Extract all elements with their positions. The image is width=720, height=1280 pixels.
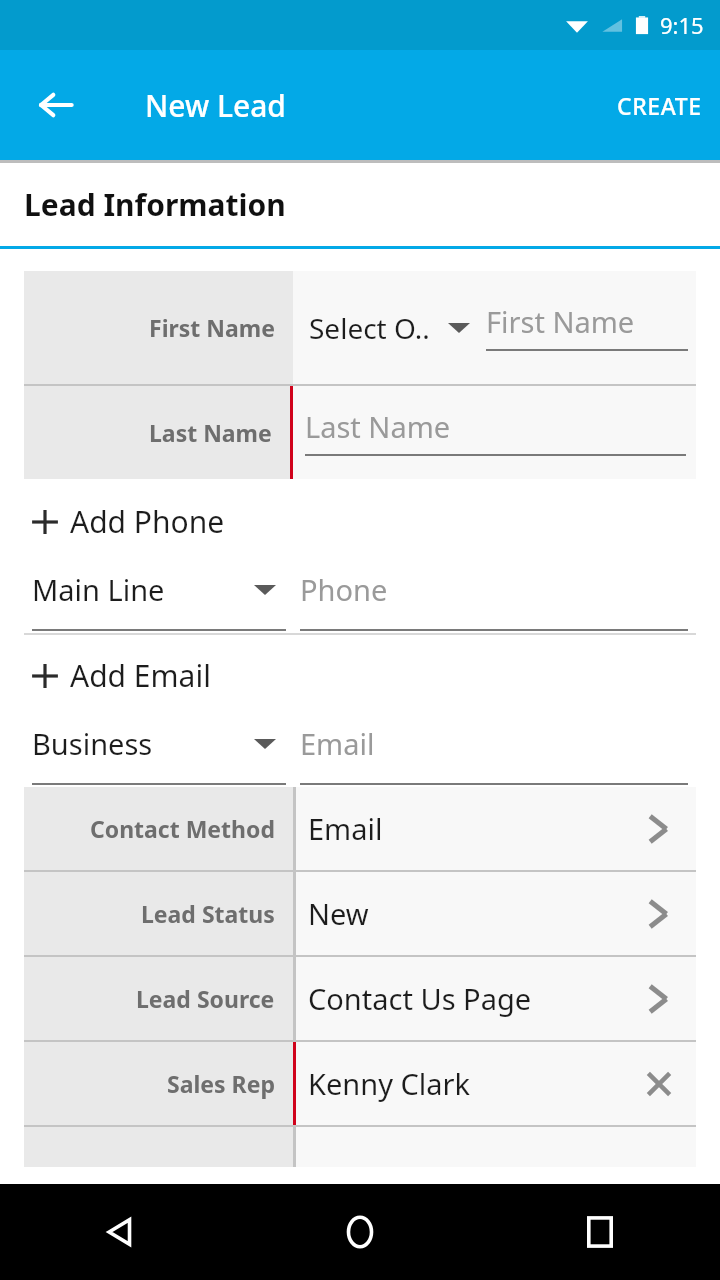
staticText: CREATE: [617, 90, 702, 121]
staticText: Last Name: [149, 417, 272, 448]
staticText: Phone: [300, 570, 388, 609]
staticText: Last Name: [305, 407, 451, 446]
button[interactable]: Recent apps: [480, 1184, 720, 1280]
button[interactable]: Back: [0, 1184, 240, 1280]
button[interactable]: First Name: [24, 271, 696, 384]
staticText: Lead Source: [136, 983, 275, 1014]
button[interactable]: Sales Rep: [24, 1042, 696, 1125]
button[interactable]: Back: [22, 71, 90, 139]
button[interactable]: Home: [240, 1184, 480, 1280]
button[interactable]: Lead Source: [24, 957, 696, 1040]
staticText: Lead Information: [24, 184, 286, 225]
staticText: New: [308, 894, 369, 933]
staticText: New Lead: [145, 85, 286, 126]
staticText: Add Phone: [70, 501, 225, 542]
staticText: Kenny Clark: [308, 1064, 471, 1103]
button[interactable]: Business: [24, 724, 286, 763]
button[interactable]: [24, 1127, 696, 1167]
staticText: 9:15: [660, 10, 704, 40]
button[interactable]: Last Name: [24, 386, 696, 479]
staticText: First Name: [149, 312, 275, 343]
staticText: Sales Rep: [167, 1068, 275, 1099]
staticText: Main Line: [32, 570, 165, 609]
button[interactable]: Add Email: [0, 649, 720, 702]
staticText: Lead Status: [141, 898, 275, 929]
button[interactable]: CREATE: [599, 72, 720, 139]
button[interactable]: Clear Sales Rep: [636, 1061, 682, 1107]
staticText: Select O..: [309, 309, 430, 347]
staticText: Contact Method: [90, 813, 275, 844]
button[interactable]: Add Phone: [0, 495, 720, 548]
button[interactable]: Lead Status: [24, 872, 696, 955]
staticText: First Name: [486, 302, 635, 341]
button[interactable]: Phone: [300, 570, 696, 609]
staticText: Add Email: [70, 655, 211, 696]
staticText: Email: [308, 809, 383, 848]
staticText: Business: [32, 724, 153, 763]
button[interactable]: Main Line: [24, 570, 286, 609]
button[interactable]: Contact Method: [24, 787, 696, 870]
staticText: Contact Us Page: [308, 979, 532, 1018]
staticText: Email: [300, 724, 375, 763]
button[interactable]: Email: [300, 724, 696, 763]
